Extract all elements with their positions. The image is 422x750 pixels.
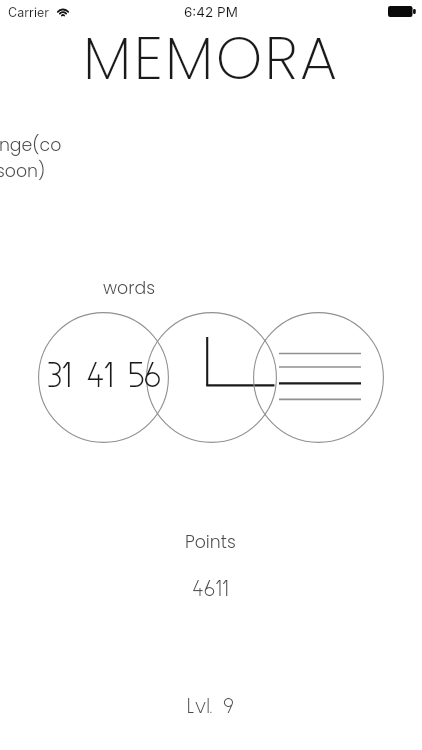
staticText: words <box>103 276 155 300</box>
button[interactable]: words game <box>253 274 384 443</box>
button[interactable]: challenge, coming soon <box>146 131 277 443</box>
staticText: Lvl. 9 <box>187 695 234 717</box>
staticText: Points <box>185 530 236 554</box>
other: Wi-Fi signal <box>56 5 70 17</box>
staticText: 6:42 PM <box>184 4 238 20</box>
staticText: MEMORA <box>83 17 340 100</box>
staticText: 4611 <box>192 577 229 601</box>
staticText: 31 41 56 <box>47 358 161 395</box>
button[interactable]: numbers game <box>38 274 169 443</box>
staticText: challenge(coming soon) <box>0 133 78 183</box>
staticText: Carrier <box>8 5 49 20</box>
other: Battery full <box>388 6 416 17</box>
